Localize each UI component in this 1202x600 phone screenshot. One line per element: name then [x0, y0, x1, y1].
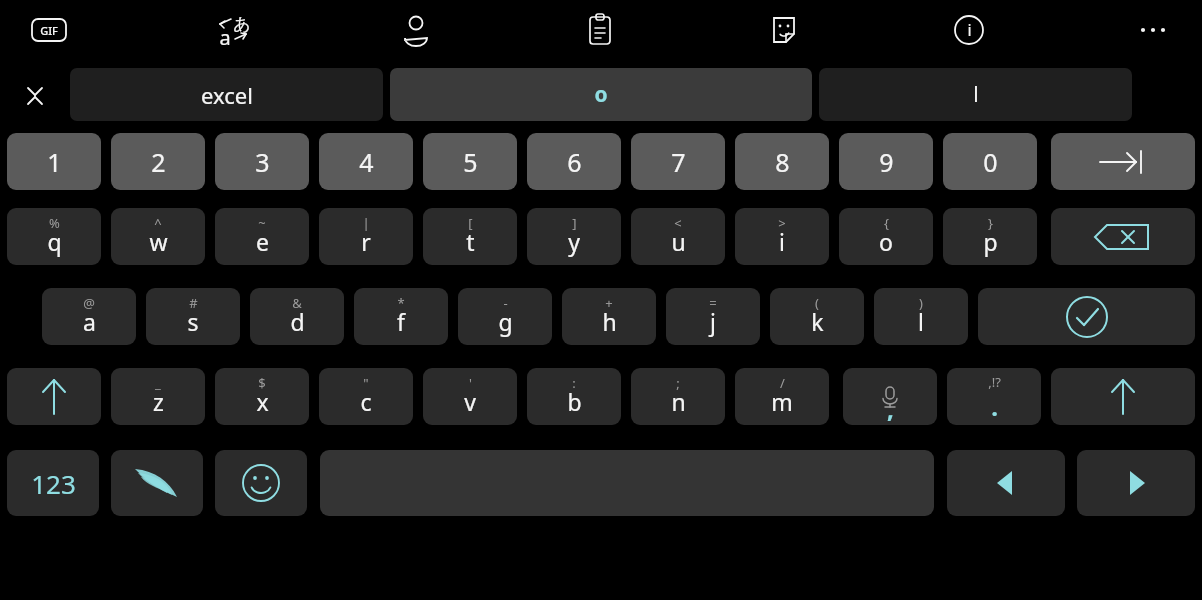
staticText: 6 [567, 145, 582, 179]
button[interactable]: Numbers [7, 450, 99, 516]
button[interactable]: # [146, 288, 240, 345]
button[interactable]: * [354, 288, 448, 345]
staticText: ^ [154, 214, 162, 232]
staticText: 0 [983, 145, 998, 179]
button[interactable]: Shift [7, 368, 101, 425]
button[interactable]: " [319, 368, 413, 425]
button[interactable]: - [458, 288, 552, 345]
staticText: [ [468, 214, 473, 232]
staticText: l [973, 80, 979, 109]
staticText: ) [919, 294, 923, 312]
button[interactable]: 0 [943, 133, 1037, 190]
button[interactable]: Enter [978, 288, 1195, 345]
staticText: 4 [359, 145, 374, 179]
staticText: q [47, 226, 62, 257]
staticText: ; [676, 374, 680, 392]
button[interactable]: [ [423, 208, 517, 265]
staticText: ' [469, 374, 472, 392]
staticText: _ [155, 374, 161, 392]
button[interactable]: 6 [527, 133, 621, 190]
button[interactable]: Collapse [14, 76, 56, 116]
button[interactable]: 4 [319, 133, 413, 190]
button[interactable]: GIF [30, 17, 68, 43]
button[interactable]: $ [215, 368, 309, 425]
staticText: 7 [671, 145, 686, 179]
button[interactable]: 9 [839, 133, 933, 190]
button[interactable]: , [843, 368, 937, 425]
button[interactable]: = [666, 288, 760, 345]
button[interactable]: ' [423, 368, 517, 425]
button[interactable]: 5 [423, 133, 517, 190]
button[interactable]: ^ [111, 208, 205, 265]
staticText: } [988, 214, 993, 232]
staticText: i [779, 226, 785, 257]
button[interactable]: Cursor left [947, 450, 1065, 516]
button[interactable]: ] [527, 208, 621, 265]
button[interactable]: ~ [215, 208, 309, 265]
button[interactable]: ( [770, 288, 864, 345]
button[interactable]: Shift [1051, 368, 1195, 425]
staticText: w [149, 226, 168, 257]
staticText: k [811, 306, 824, 337]
button[interactable]: 2 [111, 133, 205, 190]
button[interactable]: : [527, 368, 621, 425]
staticText: | [362, 214, 370, 232]
button[interactable]: ) [874, 288, 968, 345]
button[interactable]: Translate [209, 11, 257, 49]
button[interactable]: ,!? [947, 368, 1041, 425]
button[interactable]: % [7, 208, 101, 265]
staticText: 123 [31, 466, 76, 501]
button[interactable]: / [735, 368, 829, 425]
staticText: r [361, 226, 371, 257]
staticText: > [778, 214, 786, 232]
button[interactable]: } [943, 208, 1037, 265]
staticText: . [991, 390, 998, 423]
button[interactable]: o [390, 68, 812, 121]
button[interactable]: @ [42, 288, 136, 345]
staticText: t [466, 226, 475, 257]
staticText: , [887, 392, 894, 425]
button[interactable]: ; [631, 368, 725, 425]
staticText: v [464, 386, 476, 417]
staticText: h [602, 306, 617, 337]
staticText: p [983, 226, 998, 257]
staticText: $ [258, 374, 266, 392]
staticText: l [918, 306, 924, 337]
button[interactable]: 1 [7, 133, 101, 190]
button[interactable]: SwiftKey menu [111, 450, 203, 516]
staticText: 8 [775, 145, 790, 179]
button[interactable]: 7 [631, 133, 725, 190]
staticText: * [397, 294, 405, 312]
button[interactable]: More options [1133, 16, 1173, 44]
staticText: 1 [47, 145, 62, 179]
button[interactable]: Clipboard [583, 12, 617, 48]
staticText: - [503, 294, 508, 312]
button[interactable]: _ [111, 368, 205, 425]
button[interactable]: | [319, 208, 413, 265]
button[interactable]: 3 [215, 133, 309, 190]
button[interactable]: { [839, 208, 933, 265]
button[interactable]: Account [398, 12, 434, 48]
button[interactable]: excel [70, 68, 383, 121]
staticText: 2 [151, 145, 166, 179]
button[interactable]: Emoji [215, 450, 307, 516]
button[interactable]: < [631, 208, 725, 265]
staticText: & [292, 294, 302, 312]
staticText: excel [201, 80, 253, 110]
button[interactable]: Info [950, 11, 988, 49]
button[interactable]: 8 [735, 133, 829, 190]
staticText: u [671, 226, 686, 257]
button[interactable]: & [250, 288, 344, 345]
button[interactable]: > [735, 208, 829, 265]
button[interactable]: Backspace [1051, 208, 1195, 265]
button[interactable]: + [562, 288, 656, 345]
staticText: : [572, 374, 576, 392]
button[interactable]: l [819, 68, 1132, 121]
staticText: < [674, 214, 682, 232]
button[interactable]: Tab [1051, 133, 1195, 190]
button[interactable]: Stickers [766, 13, 802, 47]
staticText: / [780, 374, 785, 392]
staticText: ( [815, 294, 819, 312]
button[interactable]: Cursor right [1077, 450, 1195, 516]
